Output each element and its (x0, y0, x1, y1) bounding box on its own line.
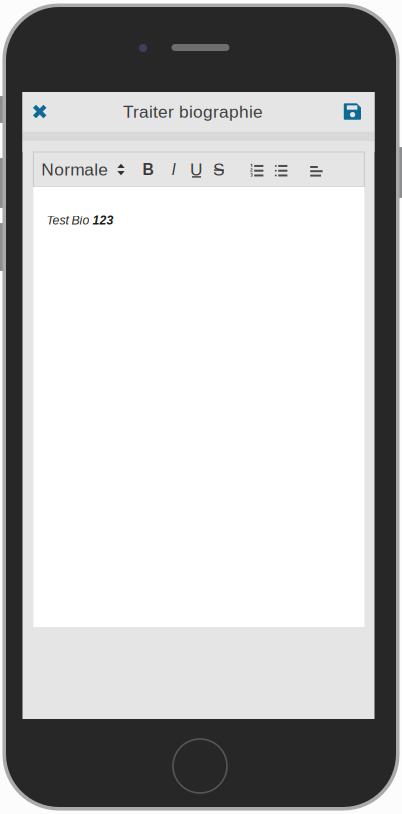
button[interactable]: Liste numérotée (245, 153, 269, 188)
button[interactable]: Italique (162, 152, 184, 187)
staticText: U (190, 160, 203, 179)
staticText: I (171, 161, 175, 178)
staticText: Test Bio (46, 213, 92, 227)
staticText: Normale (41, 160, 108, 179)
button[interactable]: Fermer (22, 92, 58, 131)
staticText: B (142, 161, 153, 178)
staticText: Traiter biographie (123, 102, 263, 122)
button[interactable]: Enregistrer (334, 92, 370, 131)
button[interactable]: Liste à puces (269, 153, 293, 188)
button[interactable]: Barré (208, 152, 230, 187)
staticText: 123 (92, 213, 113, 227)
button[interactable]: Souligné (185, 152, 207, 187)
button[interactable]: Normale (27, 152, 137, 187)
staticText: S (213, 160, 225, 179)
button[interactable]: Gras (137, 152, 159, 187)
button[interactable]: Alignement (304, 154, 328, 189)
